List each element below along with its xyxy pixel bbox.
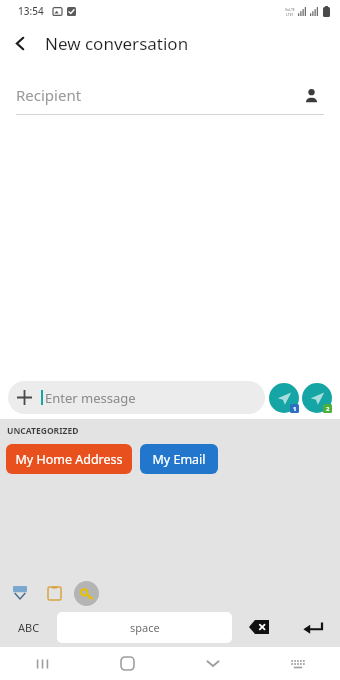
staticText: LTE1 (286, 12, 294, 17)
button[interactable]: Passwords (74, 581, 99, 606)
button[interactable]: Attach (8, 381, 265, 414)
button[interactable]: Recents (0, 647, 85, 680)
button[interactable]: Backspace (232, 610, 286, 644)
staticText: 1 (293, 405, 297, 413)
button[interactable]: Enter (286, 610, 340, 644)
staticText: UNCATEGORIZED (7, 425, 79, 437)
staticText: New conversation (45, 32, 189, 55)
staticText: 13:54 (18, 4, 44, 18)
button[interactable]: My Email (140, 444, 218, 474)
button[interactable]: ABC (0, 610, 57, 644)
button[interactable]: space (57, 612, 232, 643)
staticText: 2 (326, 405, 330, 413)
button[interactable]: Clipboard (42, 581, 66, 605)
staticText: ABC (18, 620, 40, 635)
button[interactable]: My Home Address (6, 444, 132, 474)
staticText: space (130, 620, 160, 635)
button[interactable]: Hide keyboard (170, 647, 255, 680)
button[interactable]: Home (85, 647, 170, 680)
staticText: My Home Address (15, 451, 123, 468)
button[interactable]: Send with SIM 2 (302, 383, 332, 413)
button[interactable]: Keyboard (8, 581, 32, 605)
staticText: My Email (152, 451, 206, 468)
button[interactable]: Switch keyboard (255, 647, 340, 680)
button[interactable]: Add contact (298, 82, 324, 108)
button[interactable]: Send with SIM 1 (269, 383, 299, 413)
staticText: Recipient (16, 85, 298, 105)
button[interactable]: Back (0, 23, 40, 63)
staticText: VoLTE (285, 7, 295, 12)
other: Attach (8, 381, 41, 414)
staticText: Enter message (45, 389, 136, 407)
